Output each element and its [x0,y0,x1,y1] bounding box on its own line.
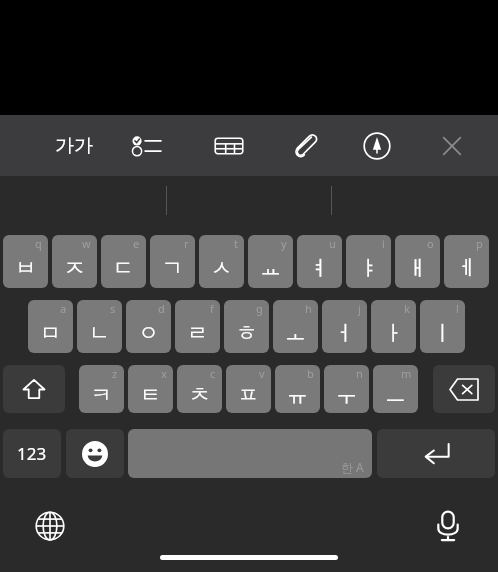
staticText: ㅎ [236,320,257,346]
staticText: m [401,366,412,381]
staticText: ㅣ [432,320,453,346]
button[interactable]: o [395,235,440,288]
button[interactable]: g [224,300,269,353]
button[interactable]: Close [424,115,480,176]
staticText: v [259,366,265,381]
staticText: ㄱ [162,255,183,281]
button[interactable]: Markup [349,115,405,176]
staticText: ㅓ [334,320,355,346]
staticText: b [307,366,314,381]
staticText: 123 [17,442,47,465]
button[interactable]: n [324,365,369,413]
staticText: ㄹ [187,320,208,346]
button[interactable]: e [101,235,146,288]
staticText: s [110,301,116,316]
staticText: ㅗ [285,320,306,346]
staticText: e [133,236,140,251]
staticText: p [476,236,483,251]
button[interactable]: w [52,235,97,288]
staticText: o [427,236,434,251]
button[interactable]: Return [377,429,495,478]
button[interactable]: q [3,235,48,288]
staticText: i [382,236,385,251]
button[interactable]: k [371,300,416,353]
staticText: ㅐ [407,255,428,281]
button[interactable]: z [79,365,124,413]
button[interactable]: Backspace [433,365,495,413]
button[interactable]: y [248,235,293,288]
staticText: k [404,301,410,316]
button[interactable]: Change language [30,506,70,546]
button[interactable]: 가가 [43,115,105,176]
button[interactable]: t [199,235,244,288]
staticText: x [161,366,167,381]
button[interactable]: j [322,300,367,353]
staticText: ㄷ [113,255,134,281]
button[interactable]: b [275,365,320,413]
button[interactable]: v [226,365,271,413]
staticText: a [60,301,67,316]
button[interactable]: h [273,300,318,353]
staticText: 가가 [55,134,93,158]
button[interactable]: r [150,235,195,288]
staticText: r [184,236,189,251]
button[interactable]: p [444,235,489,288]
button[interactable]: a [28,300,73,353]
staticText: ㅔ [456,255,477,281]
staticText: ㄴ [89,320,110,346]
staticText: ㅏ [383,320,404,346]
staticText: ㅊ [189,382,210,408]
staticText: n [356,366,363,381]
staticText: z [112,366,118,381]
staticText: ㅕ [309,255,330,281]
button[interactable]: Dictation [428,506,468,546]
staticText: u [329,236,336,251]
staticText: ㅂ [15,255,36,281]
button[interactable]: c [177,365,222,413]
staticText: g [256,301,263,316]
staticText: ㅁ [40,320,61,346]
button[interactable]: Space [128,429,372,478]
staticText: ㅠ [287,382,308,408]
button[interactable]: x [128,365,173,413]
staticText: ㅌ [140,382,161,408]
staticText: h [305,301,312,316]
staticText: d [158,301,165,316]
staticText: ㅈ [64,255,85,281]
button[interactable]: u [297,235,342,288]
staticText: ㅋ [91,382,112,408]
button[interactable]: Shift [3,365,65,413]
staticText: ㅜ [336,382,357,408]
staticText: 한 A [341,459,364,475]
staticText: f [210,301,214,316]
staticText: j [358,301,361,316]
staticText: ㅇ [138,320,159,346]
button[interactable]: s [77,300,122,353]
staticText: w [82,236,91,251]
button[interactable]: Emoji [66,429,124,478]
staticText: ㅑ [358,255,379,281]
staticText: ㅅ [211,255,232,281]
button[interactable]: m [373,365,418,413]
staticText: c [210,366,216,381]
staticText: y [281,236,287,251]
button[interactable]: 123 [3,429,61,478]
staticText: ㅛ [260,255,281,281]
staticText: ㅡ [385,382,406,408]
button[interactable]: l [420,300,465,353]
staticText: t [234,236,238,251]
button[interactable]: f [175,300,220,353]
button[interactable]: Attach [277,115,333,176]
button[interactable]: Checklist [118,115,174,176]
staticText: q [35,236,42,251]
button[interactable]: i [346,235,391,288]
button[interactable]: Table [201,115,257,176]
button[interactable]: d [126,300,171,353]
staticText: l [456,301,459,316]
staticText: ㅍ [238,382,259,408]
